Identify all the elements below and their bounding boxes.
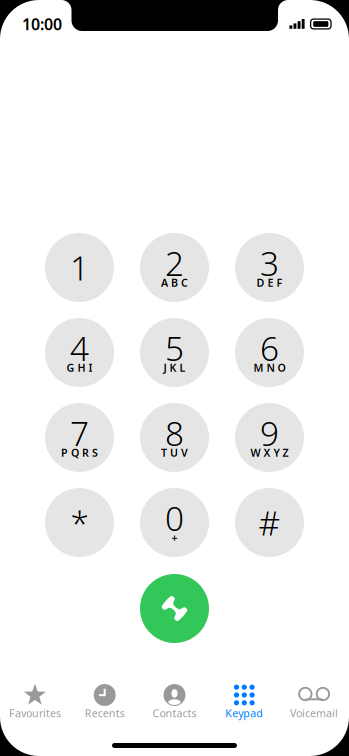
staticText: 7 [70, 411, 89, 455]
staticText: Keypad [225, 706, 263, 720]
staticText: Contacts [152, 706, 196, 720]
staticText: Voicemail [290, 706, 338, 720]
button[interactable]: Contacts [140, 683, 209, 719]
button[interactable]: Recents [70, 683, 140, 719]
button[interactable]: Keypad [209, 683, 279, 719]
staticText: 4 [70, 326, 89, 370]
button[interactable]: 2 [140, 233, 209, 302]
button[interactable]: 0 [140, 488, 209, 557]
staticText: 0 [165, 496, 184, 540]
button[interactable]: 4 [45, 318, 114, 387]
staticText: Recents [85, 706, 125, 720]
button[interactable]: 5 [140, 318, 209, 387]
staticText: W X Y Z [250, 445, 288, 460]
button[interactable]: 8 [140, 403, 209, 472]
button[interactable]: Call [140, 574, 209, 643]
staticText: 6 [260, 326, 279, 370]
button[interactable]: # [235, 488, 304, 557]
staticText: J K L [163, 360, 185, 375]
staticText: # [258, 500, 280, 545]
staticText: + [171, 530, 177, 545]
staticText: 8 [165, 411, 184, 455]
staticText: 2 [165, 241, 184, 285]
button[interactable]: 3 [235, 233, 304, 302]
staticText: 10:00 [22, 13, 62, 35]
staticText: * [70, 500, 88, 545]
button[interactable]: Favourites [0, 683, 70, 719]
button[interactable]: 1 [45, 233, 114, 302]
staticText: M N O [253, 360, 285, 375]
button[interactable]: Voicemail [279, 683, 349, 719]
staticText: 9 [260, 411, 279, 455]
button[interactable]: * [45, 488, 114, 557]
staticText: A B C [161, 275, 188, 290]
button[interactable]: 7 [45, 403, 114, 472]
staticText: 1 [70, 245, 89, 290]
staticText: 3 [260, 241, 279, 285]
button[interactable]: 6 [235, 318, 304, 387]
staticText: 5 [165, 326, 184, 370]
staticText: P Q R S [61, 445, 98, 460]
staticText: T U V [161, 445, 188, 460]
staticText: Favourites [9, 706, 61, 720]
staticText: D E F [256, 275, 282, 290]
button[interactable]: 9 [235, 403, 304, 472]
staticText: G H I [66, 360, 92, 375]
